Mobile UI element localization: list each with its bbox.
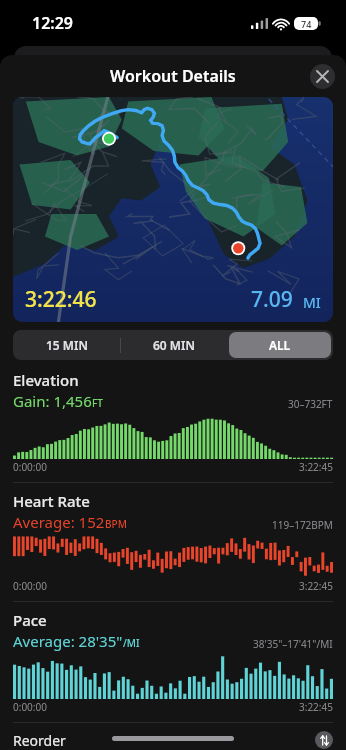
button[interactable]: Close (310, 64, 335, 89)
staticText: Average: 152 (13, 512, 105, 532)
button[interactable]: Route map (13, 97, 333, 322)
staticText: Workout Details (110, 65, 236, 87)
staticText: Elevation (13, 370, 79, 390)
staticText: Pace (13, 610, 47, 630)
staticText: 0:00:00 (13, 579, 47, 593)
staticText: 119–172BPM (272, 518, 333, 532)
staticText: 3:22:45 (299, 579, 333, 593)
button[interactable]: Heart Rate (0, 483, 346, 601)
staticText: 3:22:46 (25, 285, 97, 314)
staticText: 0:00:00 (13, 460, 47, 474)
staticText: 3:22:45 (299, 700, 333, 714)
staticText: 3:22:45 (299, 460, 333, 474)
button[interactable]: 15 MIN (15, 332, 118, 358)
staticText: 15 MIN (46, 337, 88, 353)
staticText: Gain: 1,456 (13, 391, 92, 411)
staticText: /MI (123, 636, 140, 650)
staticText: FT (92, 396, 103, 410)
button[interactable]: Reorder (0, 723, 346, 750)
staticText: Reorder (13, 731, 66, 750)
staticText: 60 MIN (153, 337, 195, 353)
staticText: Average: 28'35" (13, 631, 123, 651)
staticText: 38'35"–17'41"/MI (253, 637, 333, 651)
staticText: 0:00:00 (13, 700, 47, 714)
staticText: ALL (269, 337, 291, 353)
staticText: 7.09 (251, 285, 293, 314)
staticText: 30–732FT (288, 397, 333, 411)
staticText: BPM (105, 517, 127, 531)
staticText: 12:29 (32, 12, 74, 34)
staticText: Heart Rate (13, 491, 90, 511)
button[interactable]: Elevation (0, 370, 346, 482)
button[interactable]: ALL (229, 332, 331, 358)
staticText: 74 (301, 18, 312, 30)
button[interactable]: 60 MIN (123, 332, 225, 358)
button[interactable]: Pace (0, 602, 346, 722)
staticText: MI (303, 293, 321, 312)
